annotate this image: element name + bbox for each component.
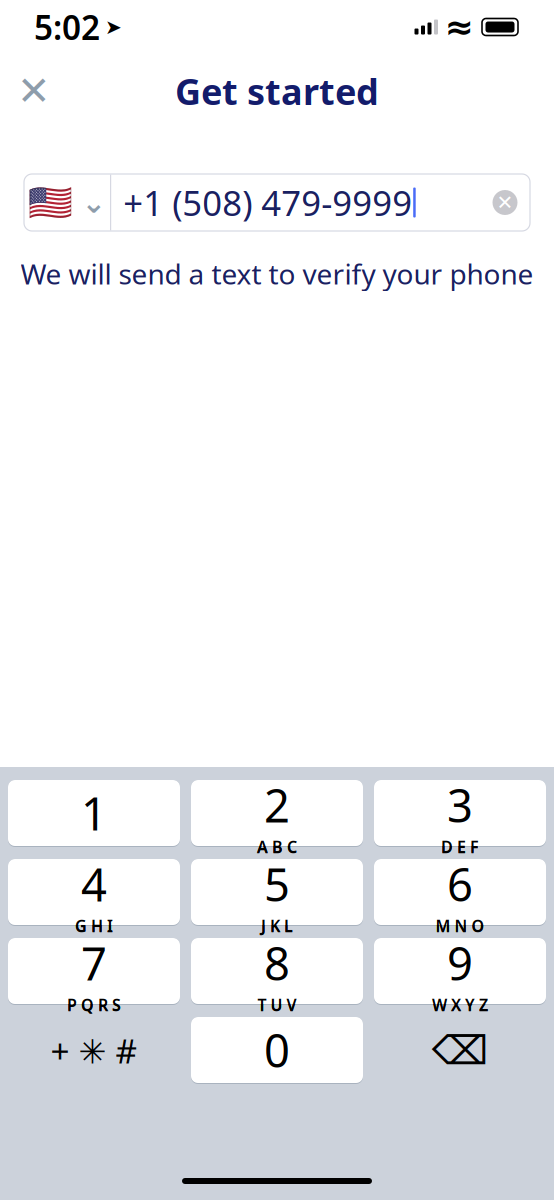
staticText: T U V [257, 994, 296, 1016]
staticText: ≈ [444, 7, 473, 47]
staticText: ⌫ [431, 1028, 488, 1073]
staticText: 1 [81, 783, 107, 843]
staticText: M N O [435, 915, 484, 937]
button[interactable]: Clear text [480, 174, 530, 230]
staticText: 2 [264, 775, 290, 835]
button[interactable]: 6 [374, 859, 546, 926]
staticText: 3 [447, 775, 473, 835]
staticText: ✕ [496, 191, 513, 214]
button[interactable]: 0 [191, 1017, 363, 1084]
staticText: 4 [81, 854, 107, 914]
staticText: 4 [81, 854, 107, 914]
button[interactable]: 2 [191, 780, 363, 847]
staticText: ⌄ [81, 186, 106, 219]
staticText: A B C [257, 836, 297, 857]
staticText: 2 [264, 775, 290, 835]
staticText: 8 [264, 933, 290, 993]
staticText: ✕ [17, 68, 51, 114]
staticText: +1 (508) 479-9999 [123, 179, 412, 225]
staticText: 0 [264, 1020, 290, 1081]
staticText: We will send a text to verify your phone [20, 255, 533, 292]
staticText: 8 [264, 933, 290, 993]
staticText: T U V [257, 994, 296, 1015]
staticText: W X Y Z [432, 994, 488, 1015]
button[interactable]: 5 [191, 859, 363, 926]
button[interactable]: 9 [374, 938, 546, 1005]
staticText: 6 [447, 854, 473, 914]
button[interactable]: 4 [8, 859, 180, 926]
staticText: 6 [447, 854, 473, 914]
button[interactable]: +1 (508) 479-9999 [111, 174, 480, 230]
staticText: W X Y Z [432, 994, 488, 1016]
staticText: 3 [447, 775, 473, 835]
button[interactable]: 8 [191, 938, 363, 1005]
button[interactable]: Close [4, 61, 64, 121]
button[interactable]: 3 [374, 780, 546, 847]
staticText: G H I [75, 915, 113, 936]
staticText: 🇺🇸 [27, 182, 72, 223]
staticText: P Q R S [67, 994, 121, 1015]
staticText: Get started [175, 67, 379, 115]
staticText: 5:02 [34, 5, 100, 49]
staticText: G H I [75, 915, 113, 937]
staticText: D E F [441, 836, 479, 858]
staticText: 5 [264, 854, 290, 914]
staticText: J K L [261, 915, 293, 937]
staticText: 5 [264, 854, 290, 914]
staticText: ➤ [105, 16, 122, 38]
button[interactable]: Plus, star, pound [8, 1017, 180, 1083]
staticText: P Q R S [67, 994, 121, 1016]
staticText: 0 [264, 1020, 290, 1080]
staticText: A B C [257, 836, 297, 858]
staticText: 1 [81, 783, 107, 844]
staticText: J K L [261, 915, 293, 936]
staticText: 9 [447, 933, 473, 993]
button[interactable]: Select country code [24, 174, 110, 230]
button[interactable]: 1 [8, 780, 180, 847]
button[interactable]: 7 [8, 938, 180, 1005]
staticText: 7 [81, 933, 107, 993]
staticText: 7 [81, 933, 107, 993]
staticText: M N O [435, 915, 484, 936]
staticText: D E F [441, 836, 479, 857]
button[interactable]: Delete [374, 1017, 546, 1083]
staticText: + ✳ # [50, 1028, 137, 1073]
staticText: 9 [447, 933, 473, 993]
